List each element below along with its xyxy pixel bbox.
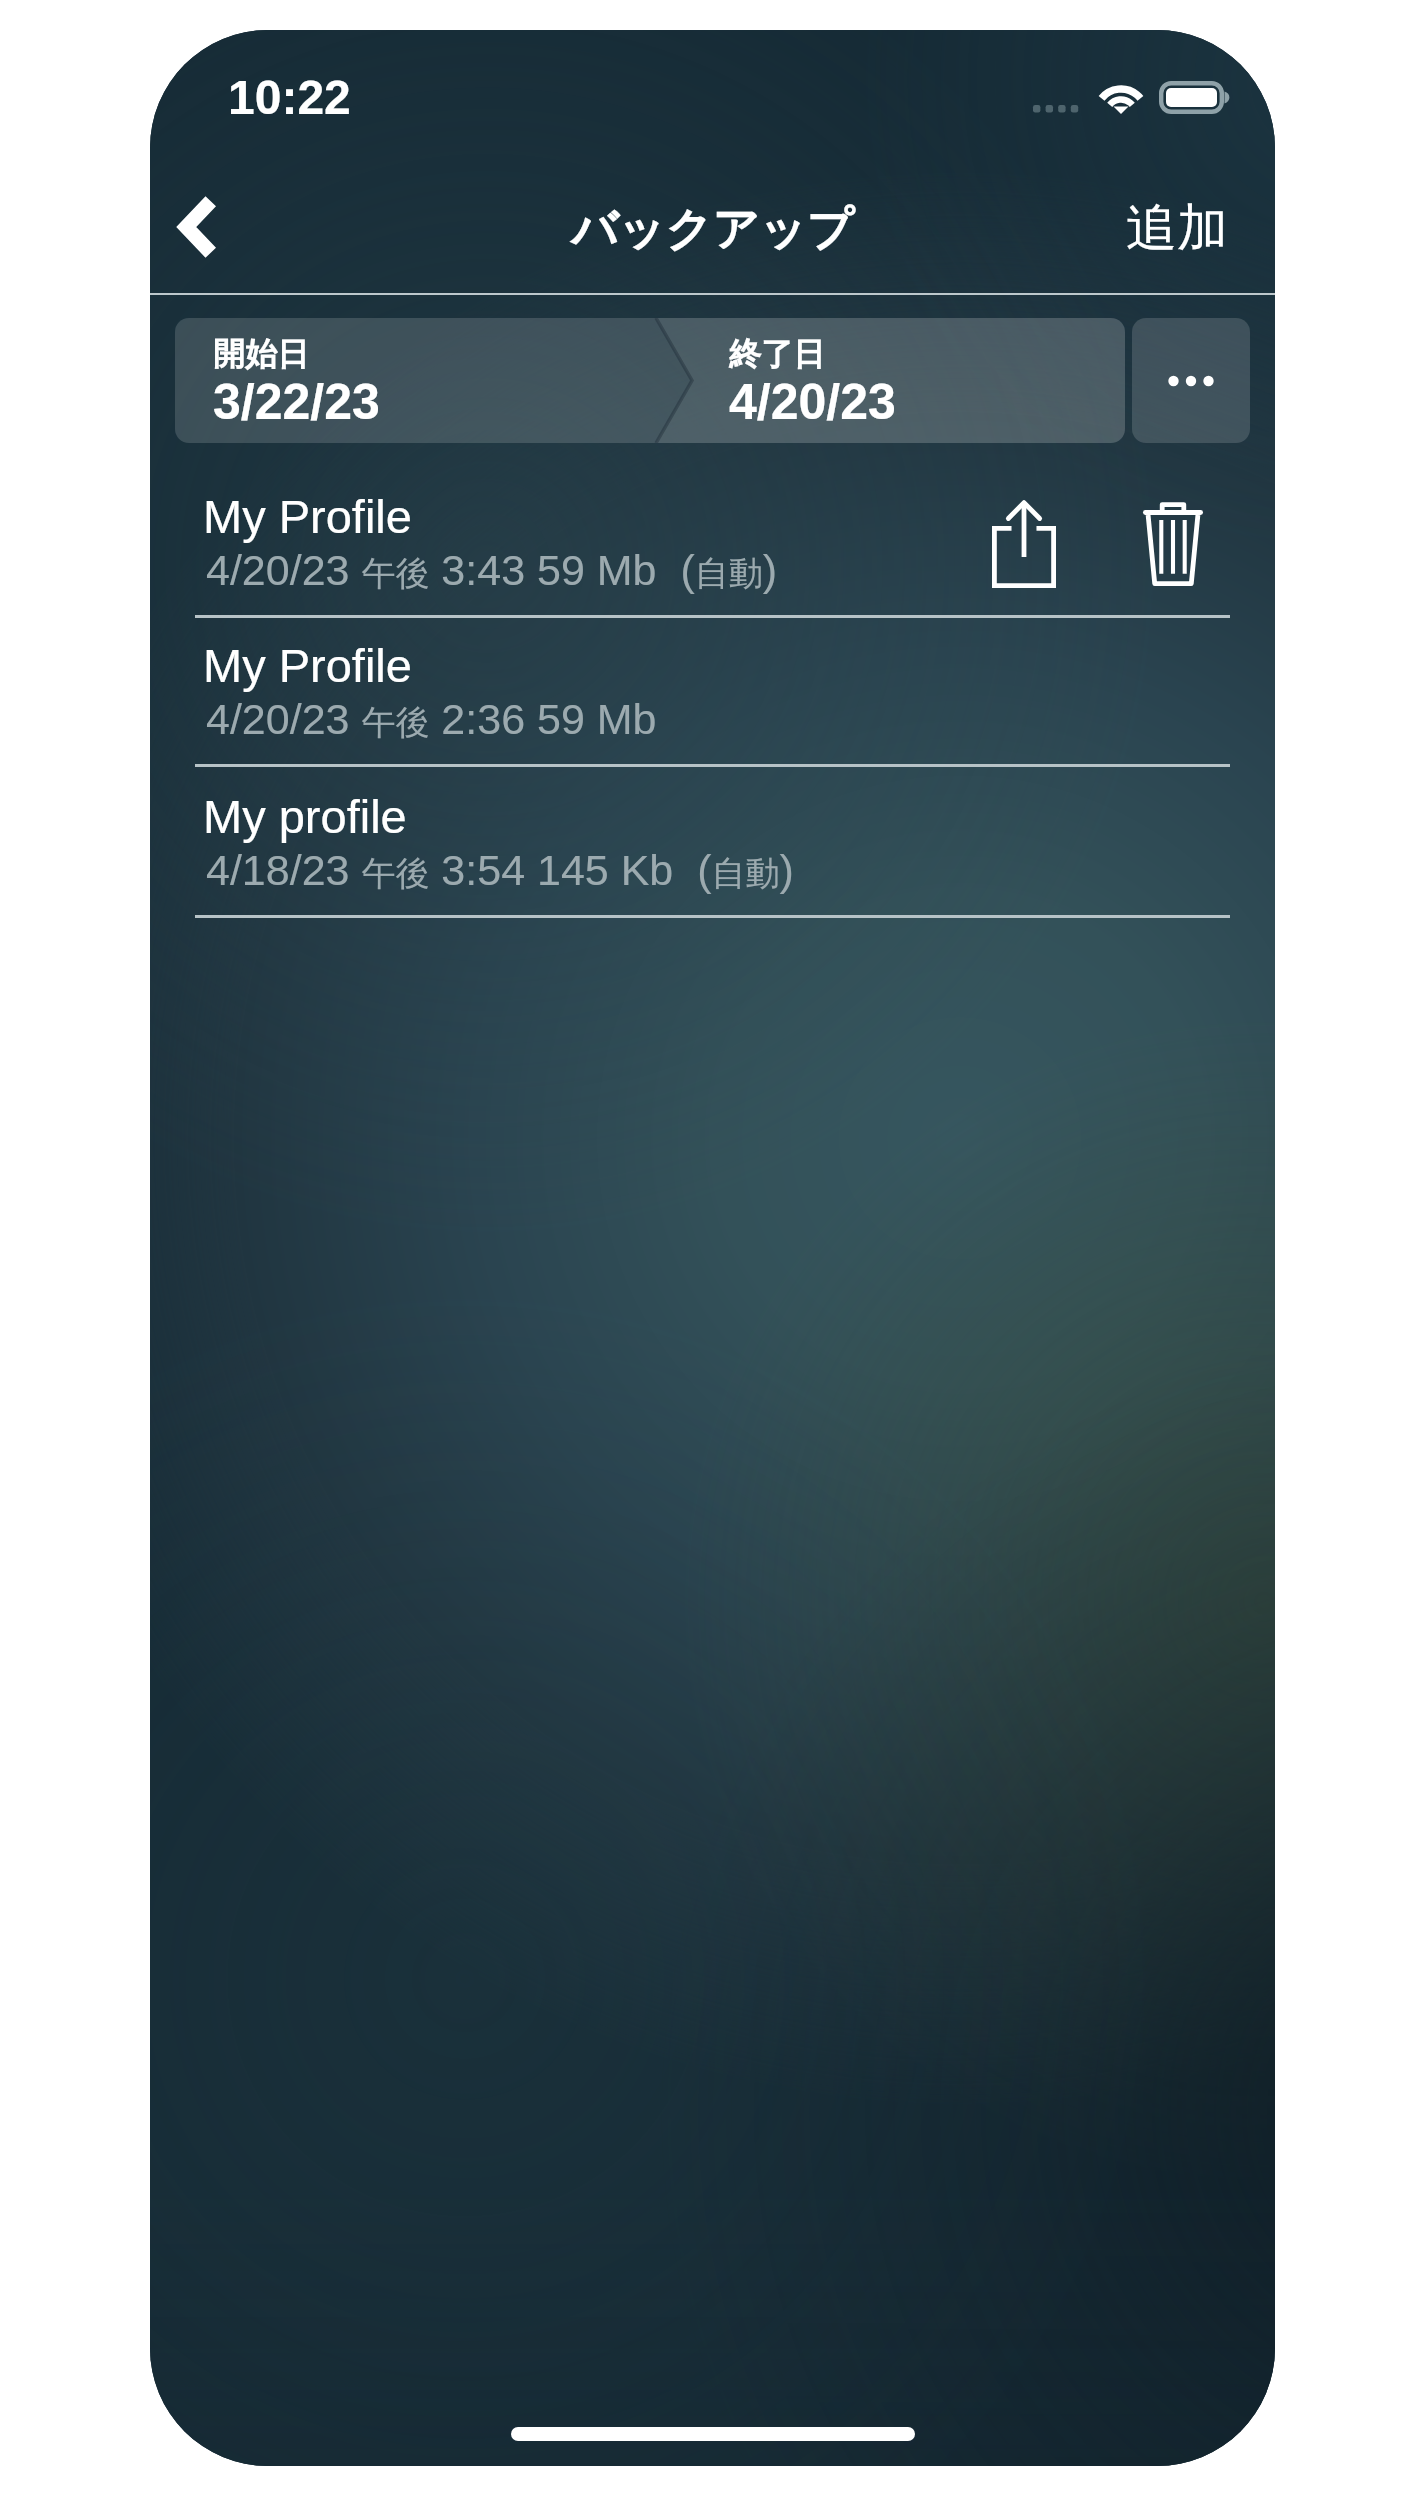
- button[interactable]: My Profile: [195, 470, 1230, 618]
- staticText: 追加: [1126, 196, 1228, 260]
- button[interactable]: Delete: [1116, 479, 1230, 609]
- staticText: 開始日: [213, 334, 309, 374]
- button[interactable]: More options: [1132, 318, 1250, 443]
- staticText: 10:22: [228, 71, 351, 125]
- button[interactable]: 開始日: [175, 318, 1125, 443]
- staticText: 4/20/23 午後 2:36 59 Mb: [206, 695, 657, 744]
- staticText: 4/20/23: [729, 374, 896, 430]
- staticText: My Profile: [203, 490, 412, 543]
- button[interactable]: My profile: [195, 770, 1230, 918]
- staticText: 3/22/23: [213, 374, 380, 430]
- staticText: My Profile: [203, 639, 412, 692]
- button[interactable]: My Profile: [195, 619, 1230, 767]
- staticText: 終了日: [729, 334, 825, 374]
- staticText: 4/18/23 午後 3:54 145 Kb (自動): [206, 846, 794, 895]
- button[interactable]: 追加: [1094, 169, 1260, 287]
- staticText: My profile: [203, 790, 407, 843]
- button[interactable]: Back: [150, 165, 258, 289]
- button[interactable]: Share: [968, 479, 1080, 609]
- staticText: 4/20/23 午後 3:43 59 Mb (自動): [206, 546, 778, 595]
- staticText: バックアップ: [571, 201, 854, 259]
